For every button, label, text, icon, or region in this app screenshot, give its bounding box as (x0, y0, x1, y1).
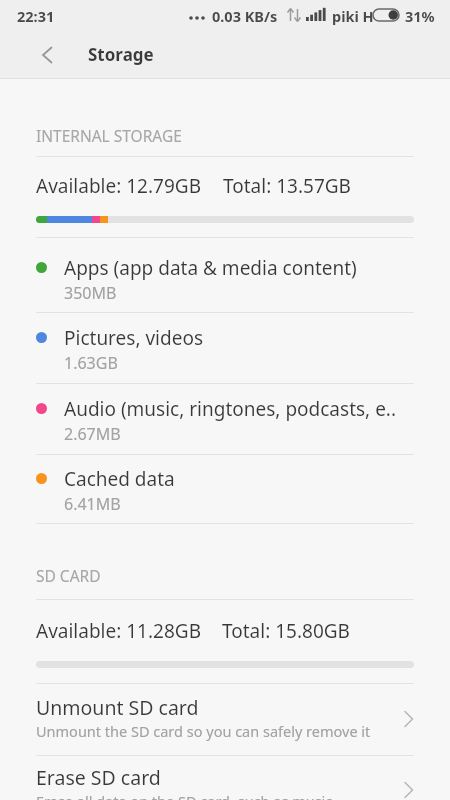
button[interactable]: Cached data (0, 454, 450, 523)
staticText: Available: 12.79GB (36, 173, 201, 199)
staticText: Total: 13.57GB (223, 173, 351, 199)
button[interactable]: Apps (app data & media content) (0, 237, 450, 312)
button[interactable]: Pictures, videos (0, 312, 450, 383)
staticText: SD CARD (36, 565, 101, 586)
button[interactable]: Unmount SD card (0, 683, 450, 755)
staticText: Erase all data on the SD card, such as m… (36, 791, 333, 800)
staticText: Erase SD card (36, 764, 161, 791)
staticText: Available: 11.28GB (36, 618, 201, 644)
staticText: 1.63GB (64, 352, 118, 374)
staticText: 31% (405, 6, 435, 26)
staticText: 2.67MB (64, 423, 121, 445)
staticText: Cached data (64, 466, 175, 492)
staticText: Storage (88, 43, 154, 66)
staticText: INTERNAL STORAGE (36, 125, 182, 146)
button[interactable]: Audio (music, ringtones, podcasts, e.. (0, 383, 450, 454)
staticText: 22:31 (17, 6, 55, 26)
staticText: Apps (app data & media content) (64, 255, 357, 281)
button[interactable]: Erase SD card (0, 755, 450, 800)
staticText: piki H (332, 6, 374, 26)
staticText: 6.41MB (64, 493, 121, 515)
staticText: 350MB (64, 282, 117, 304)
staticText: Unmount the SD card so you can safely re… (36, 721, 371, 741)
staticText: Total: 15.80GB (222, 618, 350, 644)
staticText: 0.03 KB/s (212, 6, 278, 26)
staticText: Pictures, videos (64, 325, 203, 351)
button[interactable]: Storage (0, 30, 450, 78)
staticText: Audio (music, ringtones, podcasts, e.. (64, 396, 397, 422)
staticText: Unmount SD card (36, 694, 199, 721)
